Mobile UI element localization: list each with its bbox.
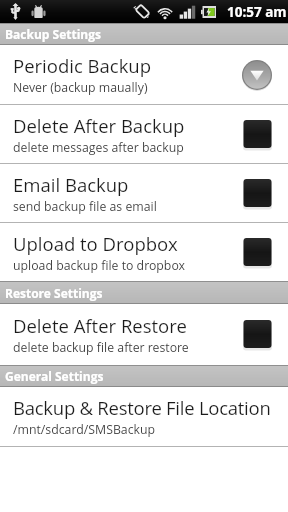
button[interactable]: Delete After Backup: [0, 105, 288, 163]
button[interactable]: Toggle Email Backup: [243, 179, 272, 208]
button[interactable]: Toggle Delete After Backup: [243, 120, 272, 149]
staticText: Periodic Backup: [13, 53, 152, 78]
button[interactable]: Toggle Upload to Dropbox: [243, 238, 272, 267]
button[interactable]: Backup & Restore File Location: [0, 387, 288, 446]
staticText: Backup & Restore File Location: [13, 395, 271, 420]
staticText: upload backup file to dropbox: [13, 257, 186, 274]
staticText: /mnt/sdcard/SMSBackup: [13, 421, 156, 438]
staticText: Backup Settings: [5, 26, 101, 42]
staticText: Email Backup: [13, 172, 129, 197]
button[interactable]: Upload to Dropbox: [0, 223, 288, 281]
button[interactable]: Toggle Delete After Restore: [243, 320, 272, 349]
button[interactable]: Delete After Restore: [0, 304, 288, 365]
staticText: Never (backup maually): [13, 79, 148, 96]
button[interactable]: Email Backup: [0, 164, 288, 222]
button[interactable]: Choose periodic backup interval: [242, 60, 272, 90]
staticText: 10:57 am: [227, 3, 287, 21]
staticText: General Settings: [5, 368, 104, 384]
button[interactable]: Periodic Backup: [0, 45, 288, 104]
staticText: delete backup file after restore: [13, 339, 189, 356]
staticText: Delete After Backup: [13, 113, 185, 138]
staticText: delete messages after backup: [13, 139, 184, 156]
staticText: Restore Settings: [5, 285, 103, 301]
staticText: send backup file as email: [13, 198, 157, 215]
staticText: Delete After Restore: [13, 313, 187, 338]
staticText: Upload to Dropbox: [13, 231, 178, 256]
